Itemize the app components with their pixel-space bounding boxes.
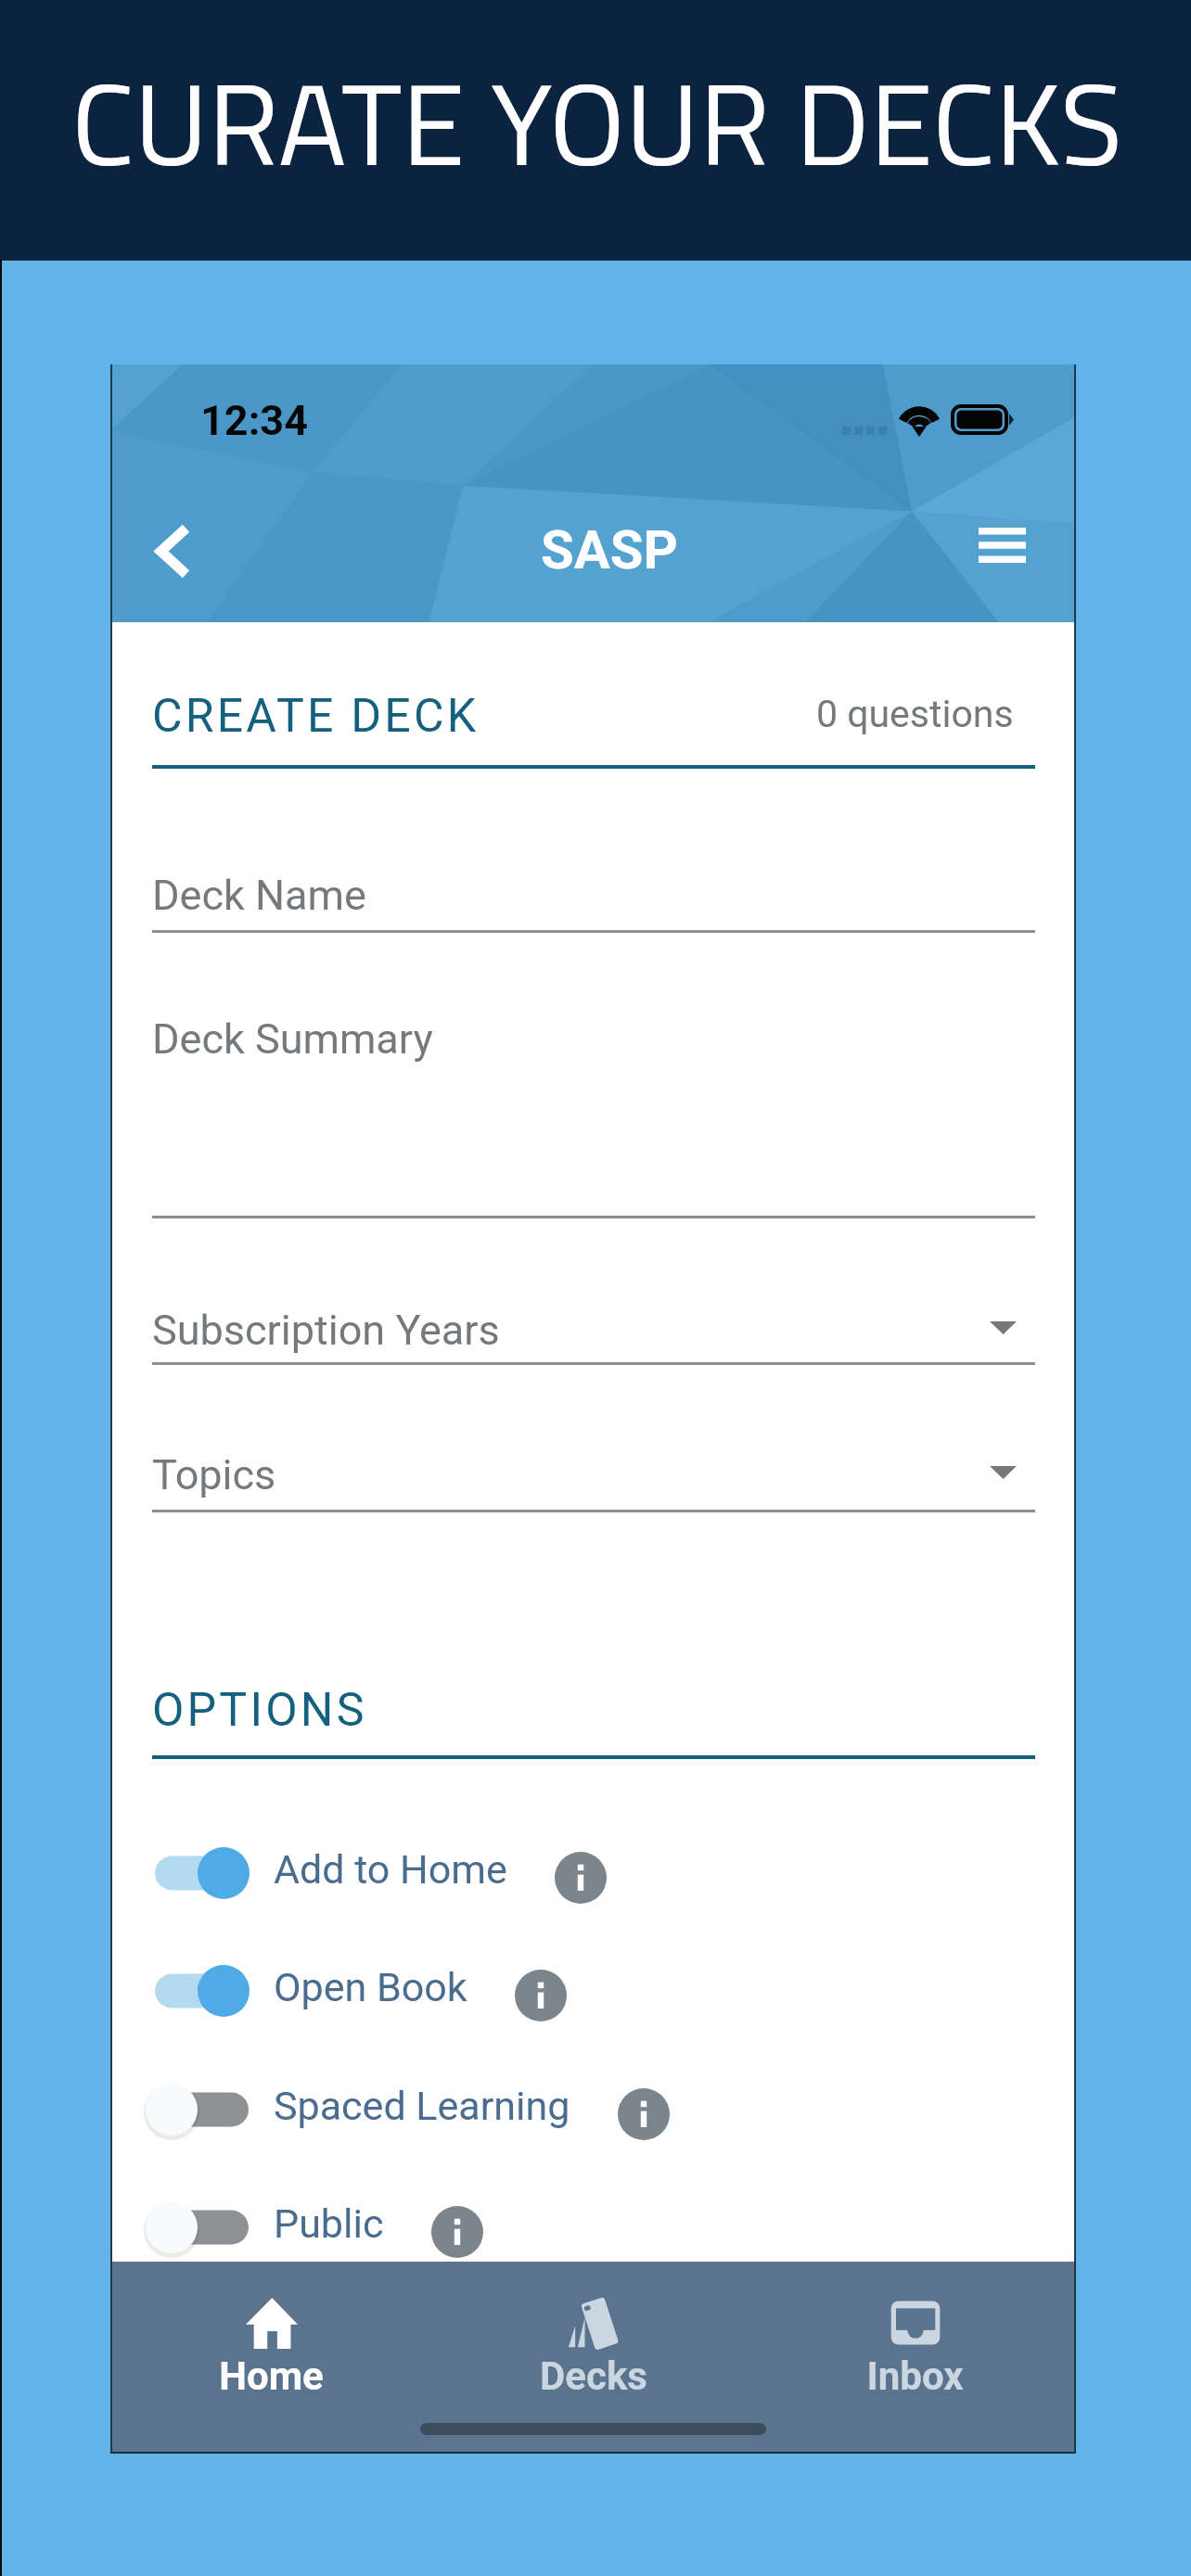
staticText: Deck Name bbox=[152, 871, 366, 920]
button[interactable]: Add to Home bbox=[110, 1832, 1076, 1914]
staticText: Decks bbox=[540, 2353, 647, 2399]
button[interactable]: Back bbox=[122, 501, 222, 601]
staticText: 0 questions bbox=[816, 692, 1014, 736]
button[interactable]: Info about Add to Home bbox=[555, 1852, 607, 1904]
button[interactable]: Spaced Learning bbox=[110, 2069, 1076, 2150]
button[interactable]: Info about Spaced Learning bbox=[618, 2088, 670, 2140]
button[interactable]: Info about Open Book bbox=[515, 1970, 567, 2021]
button[interactable]: Info about Public bbox=[431, 2206, 483, 2258]
button[interactable]: Decks bbox=[432, 2297, 754, 2399]
staticText: 12:34 bbox=[200, 396, 308, 445]
staticText: Spaced Learning bbox=[274, 2083, 570, 2129]
staticText: CREATE DECK bbox=[152, 689, 480, 744]
staticText: Inbox bbox=[866, 2353, 964, 2399]
staticText: SASP bbox=[541, 518, 678, 581]
staticText: CURATE YOUR DECKS bbox=[71, 35, 1123, 210]
button[interactable]: Menu bbox=[952, 495, 1052, 595]
staticText: Subscription Years bbox=[152, 1306, 500, 1355]
staticText: Deck Summary bbox=[152, 1014, 433, 1064]
button[interactable]: Public bbox=[110, 2187, 1076, 2268]
button[interactable]: Home bbox=[110, 2297, 432, 2399]
staticText: Topics bbox=[152, 1450, 276, 1499]
staticText: Public bbox=[274, 2200, 384, 2247]
staticText: Open Book bbox=[274, 1964, 467, 2010]
button[interactable]: Open Book bbox=[110, 1950, 1076, 2032]
staticText: OPTIONS bbox=[152, 1683, 367, 1738]
staticText: Home bbox=[219, 2353, 324, 2399]
staticText: Add to Home bbox=[274, 1846, 507, 1893]
button[interactable]: Inbox bbox=[754, 2297, 1076, 2399]
